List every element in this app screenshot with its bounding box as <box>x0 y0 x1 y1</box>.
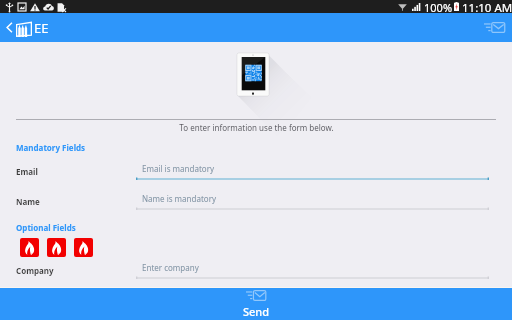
staticText: Enter company <box>142 262 199 273</box>
staticText: 11:10 AM <box>462 0 512 13</box>
staticText: To enter information use the form below. <box>179 122 334 133</box>
button[interactable]: Name is mandatory <box>136 190 489 210</box>
button[interactable]: Rate 2 <box>47 238 66 257</box>
button[interactable]: Rate 1 <box>20 238 39 257</box>
button[interactable]: Rate 3 <box>74 238 93 257</box>
staticText: Name is mandatory <box>142 193 217 204</box>
staticText: Optional Fields <box>16 222 76 233</box>
button[interactable]: Send <box>0 288 512 320</box>
staticText: 100% <box>424 0 453 13</box>
staticText: EE <box>34 19 49 37</box>
button[interactable]: Send email <box>481 13 509 42</box>
staticText: Company <box>16 265 54 276</box>
staticText: Name <box>16 196 40 207</box>
staticText: Email is mandatory <box>142 163 215 174</box>
staticText: Email <box>16 166 38 177</box>
staticText: Mandatory Fields <box>16 142 86 153</box>
button[interactable]: Enter company <box>136 259 489 279</box>
button[interactable]: Email is mandatory <box>136 160 489 180</box>
button[interactable]: Back to EE <box>6 13 49 42</box>
staticText: Send <box>243 304 270 319</box>
